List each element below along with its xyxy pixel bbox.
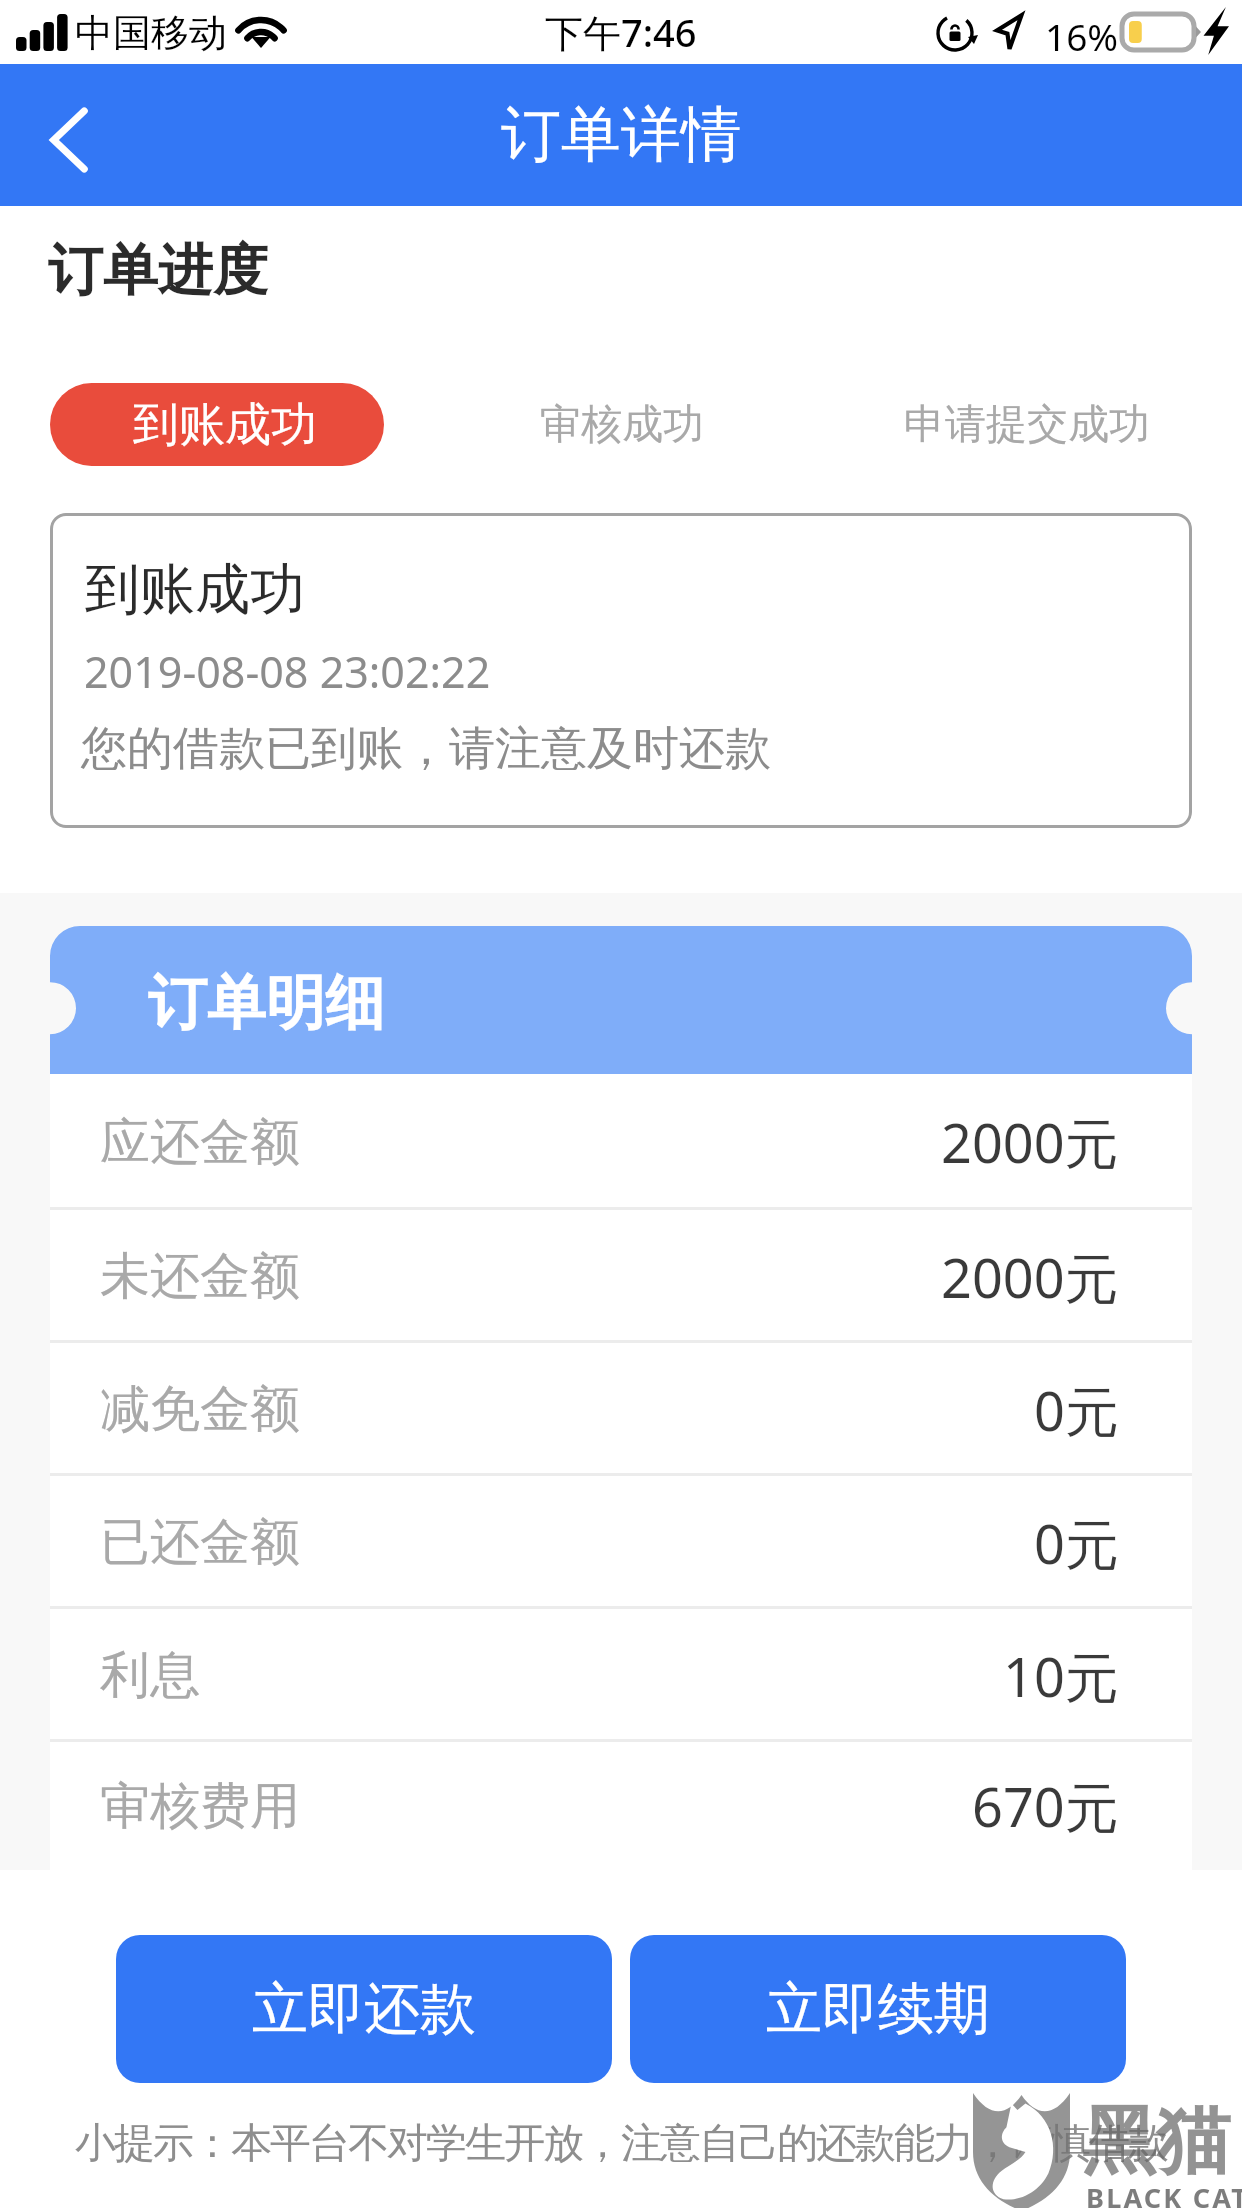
button[interactable]: 减免金额 — [50, 1343, 1192, 1476]
staticText: 订单详情 — [501, 97, 741, 173]
staticText: 应还金额 — [100, 1111, 300, 1174]
staticText: 10元 — [1003, 1639, 1119, 1713]
staticText: 订单明细 — [148, 966, 384, 1040]
staticText: 中国移动 — [75, 9, 227, 57]
button[interactable]: Back — [0, 70, 130, 200]
staticText: 审核成功 — [540, 399, 704, 451]
staticText: 0元 — [1034, 1506, 1119, 1580]
button[interactable]: 审核成功 — [455, 383, 789, 466]
staticText: 下午7:46 — [545, 6, 697, 58]
staticText: 已还金额 — [100, 1511, 300, 1574]
button[interactable]: 利息 — [50, 1609, 1192, 1742]
button[interactable]: 已还金额 — [50, 1476, 1192, 1609]
staticText: 您的借款已到账，请注意及时还款 — [81, 720, 771, 778]
staticText: 0元 — [1034, 1373, 1119, 1447]
staticText: 670元 — [972, 1769, 1119, 1843]
staticText: 2000元 — [941, 1105, 1119, 1179]
staticText: 2000元 — [941, 1240, 1119, 1314]
staticText: 订单进度 — [48, 236, 268, 305]
button[interactable]: 立即还款 — [116, 1935, 612, 2083]
staticText: 利息 — [100, 1644, 200, 1707]
button[interactable]: 应还金额 — [50, 1074, 1192, 1210]
staticText: 到账成功 — [133, 396, 317, 454]
staticText: 申请提交成功 — [904, 399, 1150, 451]
staticText: 审核费用 — [100, 1775, 300, 1838]
staticText: 2019-08-08 23:02:22 — [84, 642, 491, 701]
staticText: 减免金额 — [100, 1378, 300, 1441]
staticText: 到账成功 — [85, 555, 305, 624]
staticText: BLACK CAT — [1086, 2179, 1242, 2208]
staticText: 立即还款 — [252, 1974, 476, 2045]
button[interactable]: 未还金额 — [50, 1210, 1192, 1343]
button[interactable]: 立即续期 — [630, 1935, 1126, 2083]
button[interactable]: 审核费用 — [50, 1742, 1192, 1870]
staticText: 黑猫 — [1082, 2095, 1230, 2188]
staticText: 16% — [1045, 11, 1119, 61]
staticText: 未还金额 — [100, 1245, 300, 1308]
staticText: 小提示：本平台不对学生开放，注意自己的还款能力，谨慎借款 — [0, 2118, 1242, 2170]
button[interactable]: 申请提交成功 — [860, 383, 1194, 466]
button[interactable]: 到账成功 — [50, 383, 384, 466]
staticText: 立即续期 — [766, 1974, 990, 2045]
